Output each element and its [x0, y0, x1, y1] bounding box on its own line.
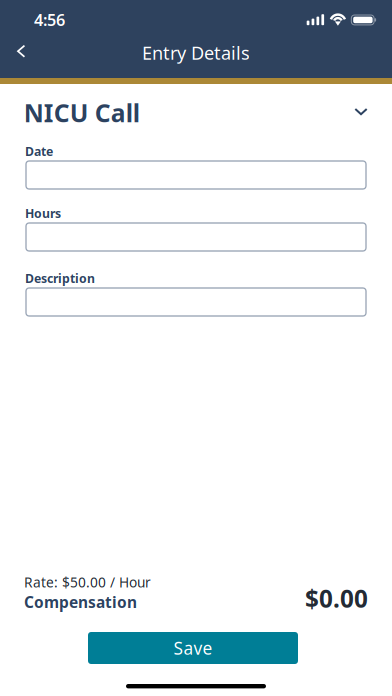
staticText: NICU Call — [24, 96, 140, 129]
staticText: Compensation — [24, 592, 137, 612]
staticText: Description — [25, 270, 95, 286]
button[interactable]: Description — [26, 288, 366, 316]
staticText: Save — [173, 636, 212, 659]
staticText: Rate: $50.00 / Hour — [24, 573, 151, 591]
button[interactable]: Change entry type — [339, 95, 383, 129]
button[interactable]: Hours — [26, 223, 366, 251]
staticText: Entry Details — [142, 41, 250, 65]
staticText: 4:56 — [34, 9, 65, 31]
staticText: Date — [25, 143, 53, 159]
staticText: Hours — [25, 205, 61, 221]
button[interactable]: Back — [0, 29, 43, 73]
staticText: $0.00 — [305, 582, 368, 614]
button[interactable]: Save — [88, 632, 298, 664]
button[interactable]: Date — [26, 161, 366, 189]
